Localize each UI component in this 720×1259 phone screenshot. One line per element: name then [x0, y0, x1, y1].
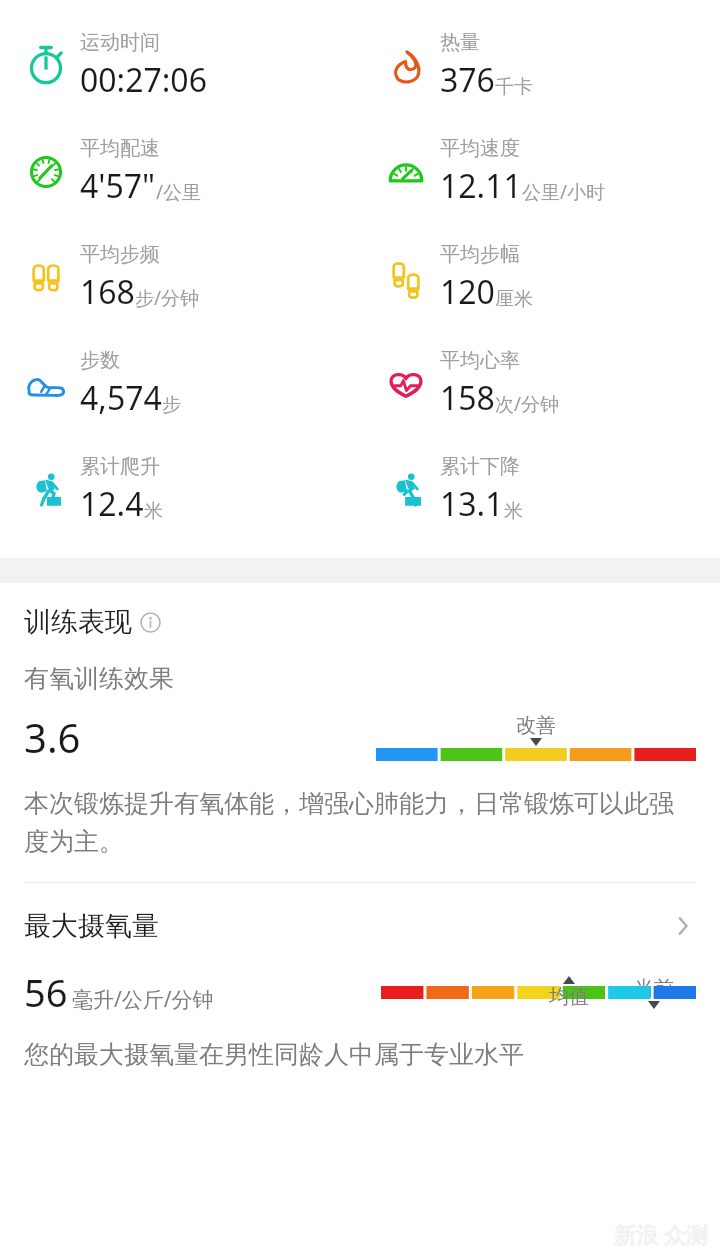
staticText: 步/分钟 [135, 285, 200, 311]
staticText: 米 [144, 499, 163, 523]
other: More [670, 913, 696, 939]
staticText: 158 [440, 376, 495, 420]
staticText: 平均步频 [80, 242, 160, 267]
staticText: 次/分钟 [495, 391, 560, 417]
staticText: 运动时间 [80, 30, 160, 55]
staticText: 毫升/公斤/分钟 [72, 985, 214, 1014]
button[interactable]: 训练表现 [24, 605, 161, 639]
staticText: 平均步幅 [440, 242, 520, 267]
button[interactable]: 平均步幅 [360, 242, 720, 314]
button[interactable]: 运动时间 [0, 30, 360, 102]
staticText: 平均心率 [440, 348, 520, 373]
staticText: 56 [24, 966, 68, 1018]
staticText: 累计爬升 [80, 454, 160, 479]
staticText: 米 [504, 499, 523, 523]
staticText: 最大摄氧量 [24, 909, 159, 943]
staticText: 平均速度 [440, 136, 520, 161]
staticText: /公里 [156, 179, 202, 205]
staticText: 训练表现 [24, 605, 132, 639]
staticText: 13.1 [440, 482, 504, 526]
button[interactable]: 最大摄氧量 [24, 909, 696, 943]
button[interactable]: 平均速度 [360, 136, 720, 208]
button[interactable]: 平均配速 [0, 136, 360, 208]
staticText: 步数 [80, 348, 120, 373]
staticText: 步 [162, 393, 181, 417]
staticText: 平均配速 [80, 136, 160, 161]
staticText: 您的最大摄氧量在男性同龄人中属于专业水平 [24, 1039, 524, 1070]
staticText: 改善 [516, 713, 556, 738]
staticText: 4'57" [80, 164, 156, 208]
button[interactable]: 累计爬升 [0, 454, 360, 526]
staticText: 当前 [634, 976, 674, 1001]
staticText: 4,574 [80, 376, 162, 420]
staticText: 新浪 众测 [614, 1219, 708, 1249]
staticText: 3.6 [24, 710, 81, 764]
other: Info [140, 612, 161, 633]
staticText: 均值 [549, 984, 589, 1009]
staticText: 本次锻炼提升有氧体能，增强心肺能力，日常锻炼可以此强度为主。 [24, 788, 696, 858]
staticText: 120 [440, 270, 495, 314]
staticText: 累计下降 [440, 454, 520, 479]
staticText: 168 [80, 270, 135, 314]
staticText: 厘米 [495, 287, 533, 311]
staticText: 376 [440, 58, 495, 102]
button[interactable]: 步数 [0, 348, 360, 420]
button[interactable]: 累计下降 [360, 454, 720, 526]
staticText: 千卡 [495, 75, 533, 99]
button[interactable]: 平均心率 [360, 348, 720, 420]
staticText: 热量 [440, 30, 480, 55]
staticText: 公里/小时 [522, 179, 606, 205]
staticText: 00:27:06 [80, 58, 207, 102]
staticText: 12.11 [440, 164, 522, 208]
staticText: 12.4 [80, 482, 144, 526]
button[interactable]: 平均步频 [0, 242, 360, 314]
button[interactable]: 热量 [360, 30, 720, 102]
staticText: 有氧训练效果 [24, 663, 174, 694]
